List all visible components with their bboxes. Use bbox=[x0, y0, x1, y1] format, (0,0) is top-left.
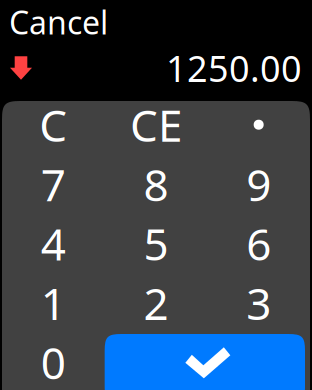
staticText: Cancel bbox=[9, 1, 108, 43]
button[interactable]: 0 bbox=[2, 333, 105, 390]
button[interactable]: 9 bbox=[207, 154, 310, 214]
button[interactable]: 3 bbox=[207, 273, 310, 333]
button[interactable]: 5 bbox=[105, 214, 207, 273]
button[interactable]: 4 bbox=[2, 214, 105, 273]
button[interactable]: 1 bbox=[2, 273, 105, 333]
staticText: 7 bbox=[41, 155, 66, 213]
button[interactable]: 2 bbox=[105, 273, 207, 333]
staticText: 2 bbox=[143, 274, 168, 332]
staticText: 9 bbox=[246, 155, 271, 213]
staticText: 3 bbox=[246, 274, 271, 332]
button[interactable]: Confirm bbox=[105, 334, 305, 390]
button[interactable]: C bbox=[2, 95, 105, 154]
staticText: 8 bbox=[143, 155, 168, 213]
staticText: 0 bbox=[41, 333, 66, 390]
staticText: 5 bbox=[143, 214, 168, 273]
staticText: 1 bbox=[41, 274, 66, 332]
button[interactable]: Decimal point bbox=[207, 95, 310, 154]
staticText: 6 bbox=[246, 214, 271, 273]
button[interactable]: 7 bbox=[2, 154, 105, 214]
staticText: CE bbox=[130, 95, 182, 154]
button[interactable]: 6 bbox=[207, 214, 310, 273]
staticText: 4 bbox=[41, 214, 66, 273]
button[interactable]: 8 bbox=[105, 154, 207, 214]
button[interactable]: CE bbox=[105, 95, 207, 154]
button[interactable]: Cancel bbox=[0, 1, 312, 43]
staticText: 1250.00 bbox=[166, 44, 302, 92]
staticText: C bbox=[39, 95, 67, 154]
